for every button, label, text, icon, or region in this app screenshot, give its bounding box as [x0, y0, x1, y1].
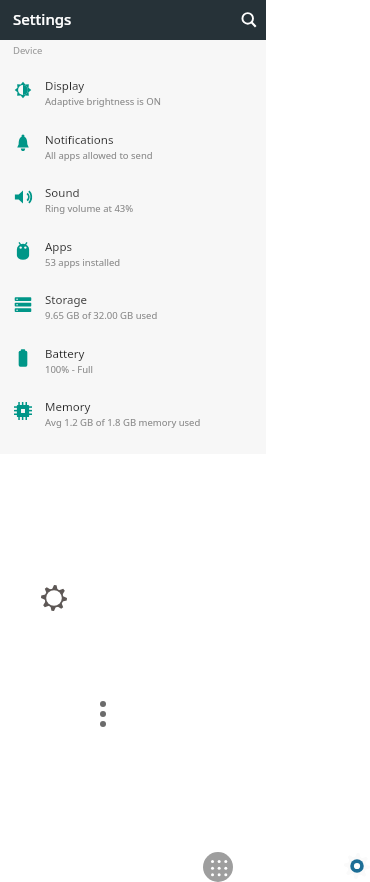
staticText: Sound	[45, 185, 80, 201]
staticText: Battery	[45, 346, 85, 362]
staticText: Notifications	[45, 132, 114, 148]
button[interactable]: Battery	[0, 338, 266, 391]
button[interactable]: Display	[0, 70, 266, 123]
staticText: 100% - Full	[45, 363, 93, 376]
staticText: 9.65 GB of 32.00 GB used	[45, 309, 158, 322]
staticText: Device	[13, 44, 43, 57]
button[interactable]: Memory	[0, 391, 266, 444]
button[interactable]: Settings shortcut	[343, 852, 370, 880]
staticText: Settings	[13, 9, 72, 29]
staticText: Storage	[45, 292, 87, 308]
staticText: Memory	[45, 399, 91, 415]
button[interactable]: All apps	[203, 852, 233, 882]
button[interactable]: Notifications	[0, 124, 266, 177]
staticText: Apps	[45, 239, 73, 255]
staticText: Ring volume at 43%	[45, 202, 134, 215]
staticText: 53 apps installed	[45, 256, 121, 269]
staticText: All apps allowed to send	[45, 149, 153, 162]
button[interactable]: Sound	[0, 177, 266, 230]
button[interactable]: Apps	[0, 231, 266, 284]
button[interactable]: Search	[235, 6, 263, 34]
staticText: Avg 1.2 GB of 1.8 GB memory used	[45, 416, 201, 429]
button[interactable]: Settings	[40, 584, 68, 612]
button[interactable]: More options	[92, 698, 114, 730]
staticText: Display	[45, 78, 85, 94]
button[interactable]: Storage	[0, 284, 266, 337]
staticText: Adaptive brightness is ON	[45, 95, 161, 108]
